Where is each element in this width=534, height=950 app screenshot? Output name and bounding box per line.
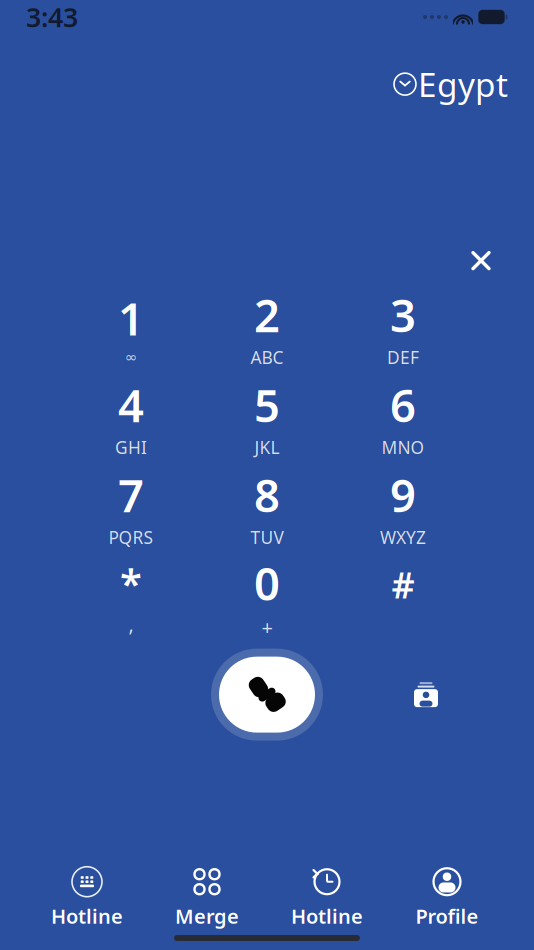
staticText: 5: [254, 374, 280, 435]
button[interactable]: 8: [212, 470, 322, 544]
staticText: GHI: [115, 436, 147, 459]
button[interactable]: Profile: [387, 867, 507, 929]
staticText: ∞: [125, 349, 137, 365]
staticText: +: [261, 614, 272, 641]
staticText: 2: [254, 284, 280, 345]
staticText: WXYZ: [380, 526, 426, 549]
button[interactable]: Hotline: [27, 867, 147, 929]
staticText: 3:43: [26, 0, 78, 35]
button[interactable]: Hotline: [267, 867, 387, 929]
staticText: TUV: [250, 526, 283, 549]
button[interactable]: Call: [207, 647, 327, 743]
button[interactable]: 2: [212, 290, 322, 364]
staticText: 9: [390, 464, 416, 525]
button[interactable]: 1: [76, 290, 186, 364]
staticText: Hotline: [51, 903, 123, 929]
button[interactable]: Merge: [147, 867, 267, 929]
staticText: 7: [118, 464, 144, 525]
staticText: ,: [128, 610, 133, 637]
button[interactable]: 9: [348, 470, 458, 544]
staticText: *: [120, 556, 142, 609]
staticText: 6: [390, 374, 416, 435]
staticText: 1: [118, 288, 144, 348]
staticText: JKL: [254, 436, 279, 459]
button[interactable]: 4: [76, 380, 186, 454]
button[interactable]: 3: [348, 290, 458, 364]
staticText: 0: [254, 553, 280, 613]
button[interactable]: Egypt: [388, 56, 514, 112]
staticText: MNO: [381, 436, 424, 459]
staticText: Profile: [415, 903, 478, 929]
staticText: 8: [254, 464, 280, 525]
button[interactable]: 6: [348, 380, 458, 454]
staticText: 4: [118, 374, 144, 435]
staticText: Merge: [175, 903, 239, 929]
staticText: Hotline: [291, 903, 363, 929]
button[interactable]: Delete: [454, 234, 508, 288]
staticText: PQRS: [108, 526, 153, 549]
button[interactable]: Contacts: [400, 669, 452, 721]
button[interactable]: 0: [212, 560, 322, 634]
button[interactable]: #: [348, 560, 458, 634]
staticText: Egypt: [418, 62, 508, 106]
staticText: #: [391, 561, 414, 608]
staticText: 3: [390, 284, 416, 345]
button[interactable]: *: [76, 560, 186, 634]
staticText: DEF: [387, 346, 419, 369]
button[interactable]: 5: [212, 380, 322, 454]
button[interactable]: 7: [76, 470, 186, 544]
staticText: ABC: [250, 346, 283, 369]
